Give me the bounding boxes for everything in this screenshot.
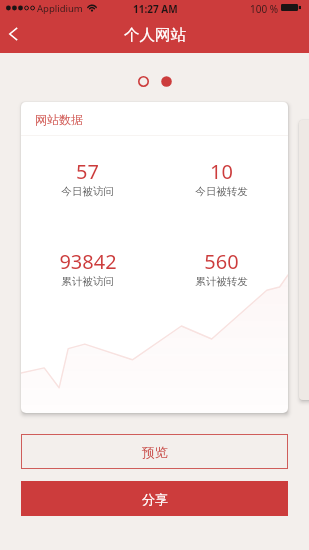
button[interactable]: Back: [0, 18, 30, 50]
staticText: 网站数据: [35, 112, 83, 127]
staticText: 今日被访问: [61, 185, 114, 198]
staticText: 93842: [59, 248, 117, 275]
staticText: 11:27 AM: [133, 2, 178, 16]
button[interactable]: Page 1: [138, 76, 149, 87]
staticText: 今日被转发: [195, 185, 248, 198]
staticText: 个人网站: [124, 25, 186, 45]
staticText: Applidium: [37, 2, 83, 15]
button[interactable]: 分享: [21, 481, 288, 516]
button[interactable]: 预览: [21, 434, 288, 469]
staticText: 累计被访问: [61, 275, 114, 288]
button[interactable]: Page 2: [161, 76, 172, 87]
staticText: 分享: [142, 491, 168, 507]
staticText: 100 %: [250, 2, 279, 16]
staticText: 560: [204, 248, 239, 275]
button[interactable]: 网站数据: [21, 102, 288, 413]
staticText: 累计被转发: [195, 275, 248, 288]
staticText: 10: [210, 158, 233, 185]
staticText: 预览: [142, 444, 168, 460]
staticText: 57: [76, 158, 99, 185]
